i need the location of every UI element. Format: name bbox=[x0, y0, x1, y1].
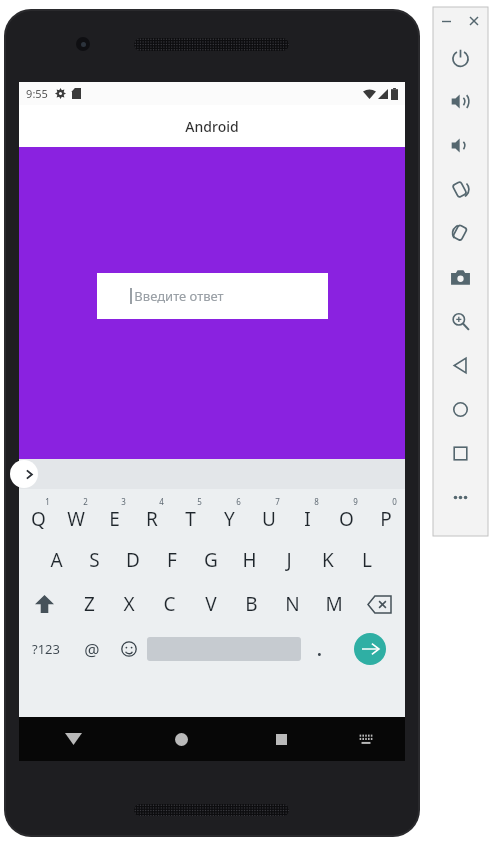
staticText: Y bbox=[224, 506, 235, 532]
button[interactable]: L bbox=[347, 538, 386, 582]
button[interactable]: I bbox=[288, 494, 327, 538]
button[interactable]: E bbox=[95, 494, 133, 538]
button[interactable]: @ bbox=[73, 626, 110, 672]
button[interactable]: R bbox=[133, 494, 171, 538]
button[interactable]: O bbox=[327, 494, 366, 538]
button[interactable]: Enter bbox=[354, 633, 386, 665]
button[interactable]: K bbox=[308, 538, 347, 582]
button[interactable]: Volume up bbox=[433, 79, 488, 123]
staticText: @ bbox=[84, 638, 100, 661]
staticText: 5 bbox=[197, 496, 202, 507]
staticText: 2 bbox=[83, 496, 88, 507]
button[interactable]: Switch keyboard bbox=[327, 717, 405, 761]
button[interactable]: N bbox=[272, 582, 313, 626]
staticText: 7 bbox=[275, 496, 280, 507]
staticText: T bbox=[185, 506, 196, 532]
button[interactable]: Emoji bbox=[110, 626, 147, 672]
button[interactable]: Zoom bbox=[433, 299, 488, 343]
staticText: B bbox=[245, 591, 258, 617]
staticText: M bbox=[325, 591, 343, 617]
button[interactable]: J bbox=[269, 538, 308, 582]
staticText: X bbox=[123, 591, 135, 617]
staticText: Q bbox=[31, 506, 46, 532]
button[interactable]: U bbox=[249, 494, 288, 538]
staticText: Z bbox=[84, 591, 95, 617]
button[interactable]: Rotate right bbox=[433, 211, 488, 255]
staticText: C bbox=[163, 591, 176, 617]
button[interactable]: Screenshot bbox=[433, 255, 488, 299]
button[interactable]: Back bbox=[433, 343, 488, 387]
button[interactable]: . bbox=[301, 626, 338, 672]
button[interactable]: Overview bbox=[433, 431, 488, 475]
staticText: A bbox=[50, 547, 63, 573]
staticText: V bbox=[205, 591, 217, 617]
staticText: E bbox=[109, 506, 120, 532]
button[interactable]: Back bbox=[19, 717, 127, 761]
button[interactable]: S bbox=[75, 538, 113, 582]
staticText: ?123 bbox=[32, 640, 60, 658]
button[interactable]: Введите ответ bbox=[97, 273, 328, 319]
button[interactable]: C bbox=[149, 582, 190, 626]
button[interactable]: P bbox=[366, 494, 405, 538]
button[interactable]: V bbox=[190, 582, 231, 626]
staticText: 4 bbox=[159, 496, 164, 507]
button[interactable]: M bbox=[313, 582, 354, 626]
staticText: 3 bbox=[121, 496, 126, 507]
staticText: D bbox=[126, 547, 140, 573]
button[interactable]: Home bbox=[127, 717, 235, 761]
staticText: U bbox=[262, 506, 276, 532]
button[interactable]: Power bbox=[433, 35, 488, 79]
button[interactable]: Home bbox=[433, 387, 488, 431]
staticText: L bbox=[362, 547, 372, 573]
staticText: F bbox=[167, 547, 177, 573]
button[interactable]: Shift bbox=[19, 582, 69, 626]
button[interactable]: Rotate left bbox=[433, 167, 488, 211]
button[interactable]: More bbox=[433, 475, 488, 519]
staticText: R bbox=[146, 506, 158, 532]
button[interactable]: Q bbox=[19, 494, 57, 538]
staticText: 0 bbox=[392, 496, 397, 507]
staticText: H bbox=[242, 547, 257, 573]
button[interactable]: X bbox=[109, 582, 149, 626]
button[interactable]: Close bbox=[460, 7, 488, 35]
staticText: O bbox=[339, 506, 354, 532]
button[interactable]: H bbox=[230, 538, 269, 582]
staticText: N bbox=[285, 591, 300, 617]
button[interactable]: Volume down bbox=[433, 123, 488, 167]
staticText: . bbox=[317, 638, 322, 661]
button[interactable]: F bbox=[152, 538, 191, 582]
staticText: Android bbox=[185, 117, 239, 136]
staticText: P bbox=[380, 506, 392, 532]
staticText: 9:55 bbox=[26, 86, 48, 101]
staticText: S bbox=[89, 547, 100, 573]
button[interactable]: Recents bbox=[235, 717, 327, 761]
button[interactable]: T bbox=[171, 494, 210, 538]
staticText: Введите ответ bbox=[134, 287, 224, 305]
staticText: J bbox=[286, 547, 292, 573]
button[interactable]: ?123 bbox=[19, 626, 73, 672]
button[interactable]: A bbox=[37, 538, 75, 582]
staticText: G bbox=[204, 547, 218, 573]
staticText: I bbox=[304, 506, 311, 532]
staticText: 1 bbox=[45, 496, 50, 507]
button[interactable]: D bbox=[113, 538, 152, 582]
button[interactable]: Backspace bbox=[354, 582, 405, 626]
button[interactable]: Expand suggestions bbox=[10, 460, 38, 488]
button[interactable]: Minimize bbox=[433, 7, 460, 35]
staticText: 6 bbox=[236, 496, 241, 507]
button[interactable]: Y bbox=[210, 494, 249, 538]
button[interactable]: W bbox=[57, 494, 95, 538]
button[interactable]: Z bbox=[69, 582, 109, 626]
staticText: K bbox=[322, 547, 334, 573]
button[interactable]: G bbox=[191, 538, 230, 582]
button[interactable]: B bbox=[231, 582, 272, 626]
staticText: 8 bbox=[314, 496, 319, 507]
staticText: 9 bbox=[353, 496, 358, 507]
staticText: W bbox=[67, 506, 85, 532]
